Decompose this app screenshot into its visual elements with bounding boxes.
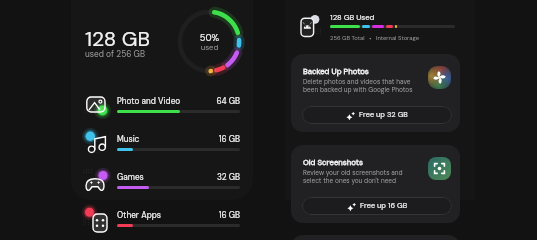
staticText: 16 GB	[117, 134, 240, 145]
staticText: Free up 16 GB	[360, 201, 408, 211]
staticText: 16 GB	[117, 210, 240, 221]
staticText: Review your old screenshots and select t…	[303, 169, 403, 185]
button[interactable]: Free up 32 GB	[302, 106, 452, 124]
staticText: used	[186, 42, 233, 52]
staticText: Free up 32 GB	[359, 110, 408, 120]
button[interactable]: Old Screenshots	[291, 145, 460, 223]
button[interactable]: Free up 16 GB	[302, 197, 452, 215]
staticText: 64 GB	[117, 96, 240, 107]
staticText: Other Apps	[117, 210, 162, 221]
other: Google Photos	[428, 66, 451, 89]
staticText: 50%	[186, 32, 233, 44]
button[interactable]: Other Apps	[78, 204, 248, 240]
staticText: Backed Up Photos	[303, 66, 369, 76]
staticText: Delete photos and videos that have been …	[303, 78, 413, 94]
other: Screenshots	[428, 157, 451, 180]
other: Music	[81, 129, 108, 156]
other: Games	[81, 167, 108, 194]
staticText: Games	[117, 172, 144, 183]
staticText: 128 GB Used	[330, 12, 375, 22]
staticText: Photo and Video	[117, 96, 181, 107]
staticText: Old Screenshots	[303, 157, 363, 167]
button[interactable]: Backed Up Photos	[291, 54, 460, 132]
button[interactable]: Music	[78, 128, 248, 164]
staticText: 32 GB	[117, 172, 240, 183]
button[interactable]: Games	[78, 166, 248, 202]
other: Photo and Video	[81, 91, 108, 118]
staticText: used of 256 GB	[85, 49, 145, 60]
button[interactable]: Photo and Video	[78, 90, 248, 126]
other: Other Apps	[81, 205, 108, 232]
other: Device storage	[298, 13, 322, 37]
staticText: Music	[117, 134, 140, 145]
staticText: 256 GB Total • Internal Storage	[330, 34, 420, 42]
staticText: 128 GB	[85, 26, 150, 53]
